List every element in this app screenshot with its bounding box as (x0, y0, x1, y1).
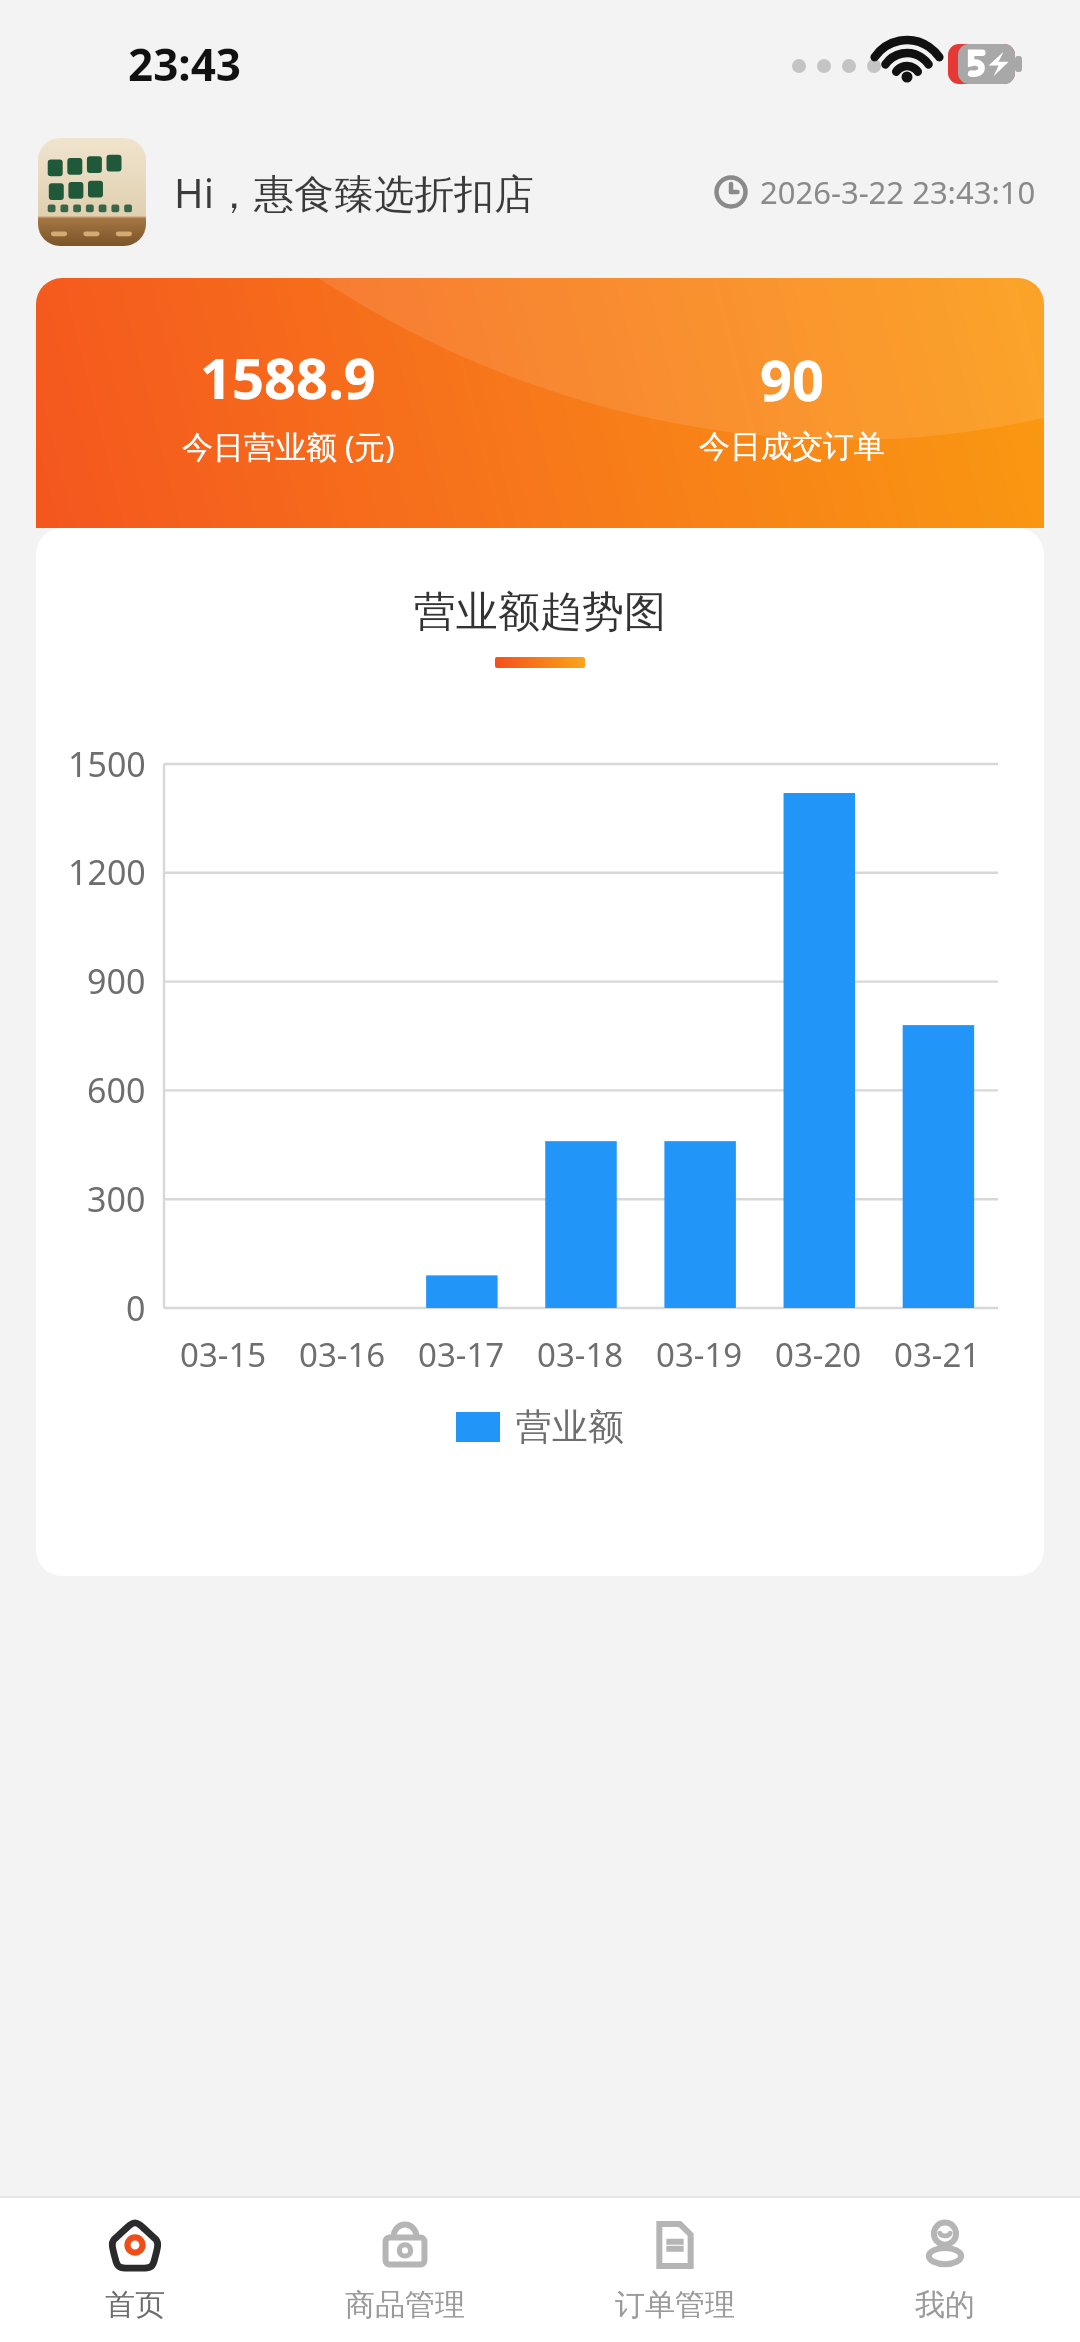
staticText: 03-16 (299, 1332, 386, 1377)
staticText: 90 (760, 341, 825, 417)
button[interactable]: 我的 (810, 2198, 1080, 2342)
button[interactable]: 90 (540, 278, 1044, 528)
staticText: 300 (87, 1176, 146, 1222)
button[interactable]: 订单管理 (540, 2198, 810, 2342)
button[interactable]: 商品管理 (270, 2198, 540, 2342)
button[interactable]: 1588.9 (36, 278, 1044, 528)
staticText: 03-20 (775, 1332, 862, 1377)
staticText: 1500 (68, 741, 146, 787)
staticText: 2026-3-22 23:43:10 (760, 171, 1036, 213)
staticText: 03-19 (656, 1332, 743, 1377)
staticText: 0 (126, 1285, 146, 1331)
staticText: 03-18 (537, 1332, 624, 1377)
staticText: 首页 (105, 2286, 165, 2324)
staticText: 03-15 (180, 1332, 267, 1377)
staticText: 营业额 (516, 1404, 624, 1449)
staticText: 03-21 (894, 1332, 981, 1377)
staticText: 03-17 (418, 1332, 505, 1377)
button[interactable]: 首页 (0, 2198, 270, 2342)
staticText: 1588.9 (200, 339, 376, 415)
staticText: Hi，惠食臻选折扣店 (174, 165, 534, 220)
staticText: 600 (87, 1067, 146, 1113)
button[interactable]: Shop logo (38, 138, 146, 246)
button[interactable]: 营业额 (36, 1404, 1044, 1449)
staticText: 营业额趋势图 (36, 586, 1044, 639)
staticText: 商品管理 (345, 2286, 465, 2324)
staticText: 今日营业额 (元) (182, 425, 395, 467)
staticText: 23:43 (128, 34, 242, 94)
staticText: 今日成交订单 (699, 427, 885, 466)
staticText: 我的 (915, 2286, 975, 2324)
staticText: 订单管理 (615, 2286, 735, 2324)
button[interactable]: 1588.9 (36, 278, 540, 528)
staticText: 1200 (68, 849, 146, 895)
staticText: 900 (87, 958, 146, 1004)
